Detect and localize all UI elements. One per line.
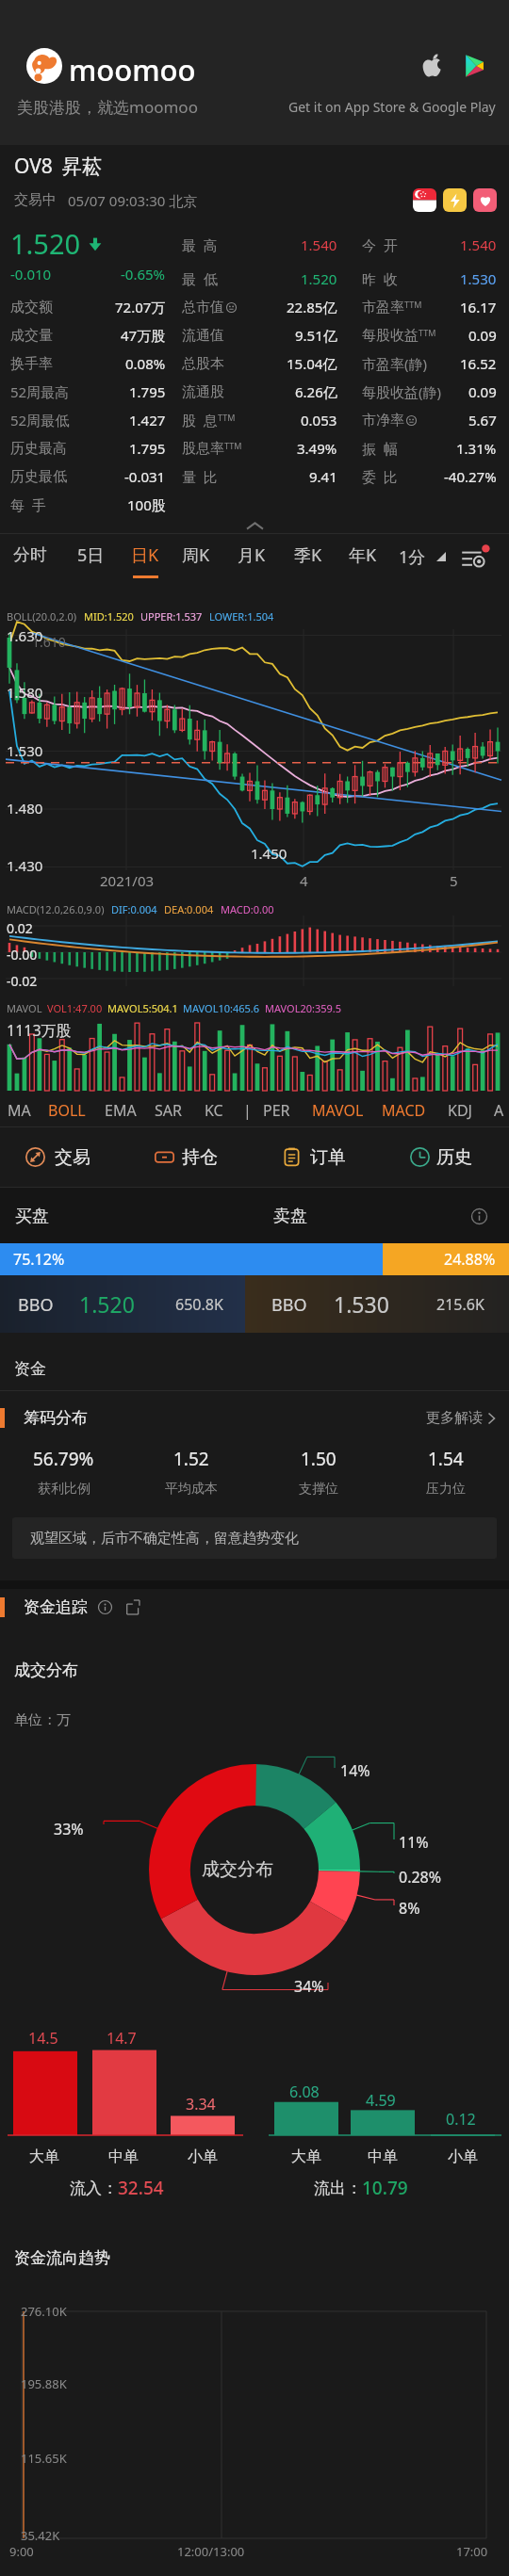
staticText: 成交量 (10, 327, 53, 345)
staticText: 34% (294, 1976, 324, 1997)
staticText: 4.59 (366, 2090, 396, 2111)
staticText: -0.031 (124, 467, 166, 486)
staticText: 分时 (13, 544, 47, 566)
staticText: 中单 (108, 2147, 139, 2166)
staticText: OV8 (14, 153, 53, 180)
staticText: 1.480 (7, 799, 43, 818)
button[interactable]: BOLL (48, 1094, 86, 1126)
staticText: MAVOL20:359.5 (265, 1001, 342, 1015)
button[interactable]: 日K (118, 538, 172, 583)
button[interactable]: 季K (281, 538, 336, 583)
staticText: 流通值 (182, 327, 224, 345)
button[interactable]: Singapore market (413, 188, 436, 212)
button[interactable]: 交易 (12, 1127, 106, 1187)
button[interactable]: Chart settings (457, 540, 493, 575)
staticText: 1.540 (460, 235, 497, 254)
button[interactable]: Share (125, 1599, 141, 1615)
staticText: 1分 (399, 545, 426, 569)
button[interactable]: 订单 (269, 1127, 361, 1187)
staticText: 5 (450, 871, 458, 890)
staticText: MACD:0.00 (221, 902, 274, 916)
staticText: 0.28% (399, 1867, 442, 1887)
staticText: 流入： (70, 2179, 118, 2198)
staticText: 3.49% (297, 439, 337, 458)
staticText: 1.530 (460, 269, 497, 288)
button[interactable]: | (243, 1094, 252, 1126)
button[interactable]: Level 2 quote (443, 188, 467, 212)
button[interactable]: 5日 (63, 538, 118, 583)
button[interactable]: 更多解读 (426, 1409, 495, 1427)
staticText: 筹码分布 (24, 1408, 88, 1428)
button[interactable]: 1分 (399, 538, 446, 575)
button[interactable]: Collapse quote detail (0, 519, 509, 533)
staticText: 获利比例 (38, 1481, 90, 1498)
staticText: 5.67 (468, 411, 497, 429)
button[interactable]: PER (263, 1094, 290, 1126)
button[interactable]: App Store (418, 52, 446, 80)
staticText: 成交分布 (14, 1661, 78, 1680)
staticText: 资金追踪 (24, 1597, 88, 1617)
button[interactable]: 分时 (3, 538, 57, 583)
staticText: 05/07 09:03:30 北京 (68, 191, 198, 210)
staticText: -0.010 (10, 265, 52, 284)
staticText: moomoo (69, 50, 196, 89)
staticText: MID:1.520 (84, 609, 134, 624)
button[interactable]: Order book info (471, 1208, 487, 1224)
button[interactable]: MAVOL (312, 1094, 364, 1126)
button[interactable]: A (494, 1094, 504, 1126)
staticText: BOLL (48, 1100, 86, 1121)
staticText: 今 开 (362, 235, 398, 254)
staticText: 1.530 (334, 1289, 389, 1319)
staticText: 3.34 (186, 2094, 216, 2114)
staticText: KDJ (448, 1100, 472, 1121)
button[interactable]: 持仓 (141, 1127, 233, 1187)
staticText: 1.520 (10, 225, 81, 262)
staticText: TTM (404, 299, 422, 310)
button[interactable]: Google Play (459, 52, 487, 80)
staticText: TTM (224, 440, 242, 451)
staticText: BOLL(20.0,2.0) (7, 609, 77, 624)
staticText: 52周最高 (10, 382, 70, 401)
staticText: 日K (131, 543, 159, 567)
staticText: MACD(12.0,26.0,9.0) (7, 902, 105, 916)
button[interactable]: EMA (105, 1094, 137, 1126)
button[interactable]: KC (205, 1094, 223, 1126)
staticText: 大单 (291, 2147, 321, 2166)
staticText: 2021/03 (100, 871, 155, 890)
staticText: 1.520 (301, 269, 337, 288)
button[interactable]: 月K (224, 538, 279, 583)
staticText: 交易中 (14, 191, 57, 209)
staticText: MACD (382, 1100, 426, 1121)
button[interactable]: SAR (155, 1094, 182, 1126)
button[interactable]: MACD (382, 1094, 426, 1126)
staticText: 月K (238, 543, 266, 567)
staticText: MAVOL (312, 1100, 364, 1121)
button[interactable]: Add to watchlist (473, 188, 497, 212)
staticText: 成交分布 (202, 1858, 273, 1881)
staticText: 9.51亿 (295, 326, 337, 345)
button[interactable]: 年K (336, 538, 390, 583)
staticText: A (494, 1100, 504, 1121)
button[interactable]: 周K (169, 538, 223, 583)
staticText: 小单 (448, 2147, 478, 2166)
staticText: 周K (182, 543, 210, 567)
staticText: 16.17 (460, 298, 497, 316)
staticText: -40.27% (444, 467, 497, 486)
staticText: 历史最低 (10, 468, 67, 486)
staticText: 12:00/13:00 (177, 2543, 245, 2560)
staticText: MA (8, 1100, 31, 1121)
staticText: Get it on App Store & Google Play (288, 98, 496, 116)
staticText: 美股港股，就选moomoo (17, 96, 198, 118)
staticText: 1.427 (129, 411, 166, 429)
staticText: DEA:0.004 (164, 902, 214, 916)
staticText: 72.07万 (115, 298, 166, 316)
staticText: LOWER:1.504 (209, 609, 274, 624)
button[interactable]: 历史 (397, 1127, 487, 1187)
button[interactable]: KDJ (448, 1094, 472, 1126)
staticText: 卖盘 (273, 1206, 307, 1227)
staticText: DIF:0.004 (111, 902, 157, 916)
staticText: 1.610 (32, 633, 66, 651)
staticText: 52周最低 (10, 411, 70, 429)
button[interactable]: MA (8, 1094, 31, 1126)
staticText: 1.450 (251, 844, 287, 863)
